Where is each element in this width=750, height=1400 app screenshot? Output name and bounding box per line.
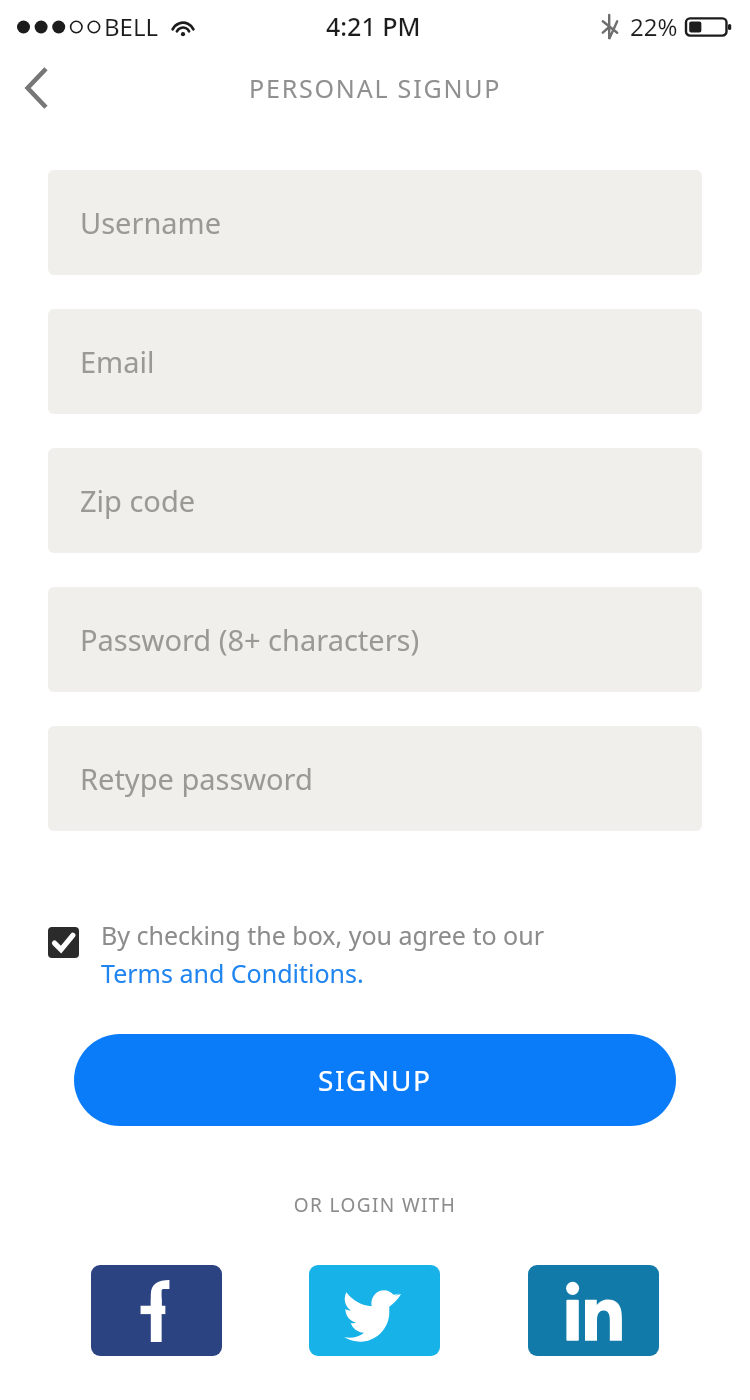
staticText: PERSONAL SIGNUP xyxy=(249,71,502,105)
button[interactable]: Sign up with LinkedIn xyxy=(528,1265,659,1356)
staticText: Zip code xyxy=(80,481,196,520)
staticText: Username xyxy=(80,203,222,242)
button[interactable]: Email xyxy=(48,309,702,414)
button[interactable]: Terms and Conditions. xyxy=(101,956,364,990)
button[interactable]: SIGNUP xyxy=(74,1034,676,1126)
button[interactable]: Back xyxy=(0,52,72,124)
button[interactable]: Retype password xyxy=(48,726,702,831)
staticText: Email xyxy=(80,342,155,381)
staticText: 22% xyxy=(630,10,678,43)
staticText: Password (8+ characters) xyxy=(80,620,420,659)
button[interactable]: Zip code xyxy=(48,448,702,553)
button[interactable]: Sign up with Facebook xyxy=(91,1265,222,1356)
staticText: SIGNUP xyxy=(318,1061,432,1099)
button[interactable]: By checking the box, you agree to our xyxy=(48,918,710,990)
staticText: By checking the box, you agree to our xyxy=(101,918,544,952)
staticText: 4:21 PM xyxy=(326,9,421,43)
staticText: Retype password xyxy=(80,759,313,798)
button[interactable]: Sign up with Twitter xyxy=(309,1265,440,1356)
button[interactable]: Password (8+ characters) xyxy=(48,587,702,692)
button[interactable]: Username xyxy=(48,170,702,275)
staticText: BELL xyxy=(104,10,159,43)
staticText: OR LOGIN WITH xyxy=(0,1192,750,1218)
